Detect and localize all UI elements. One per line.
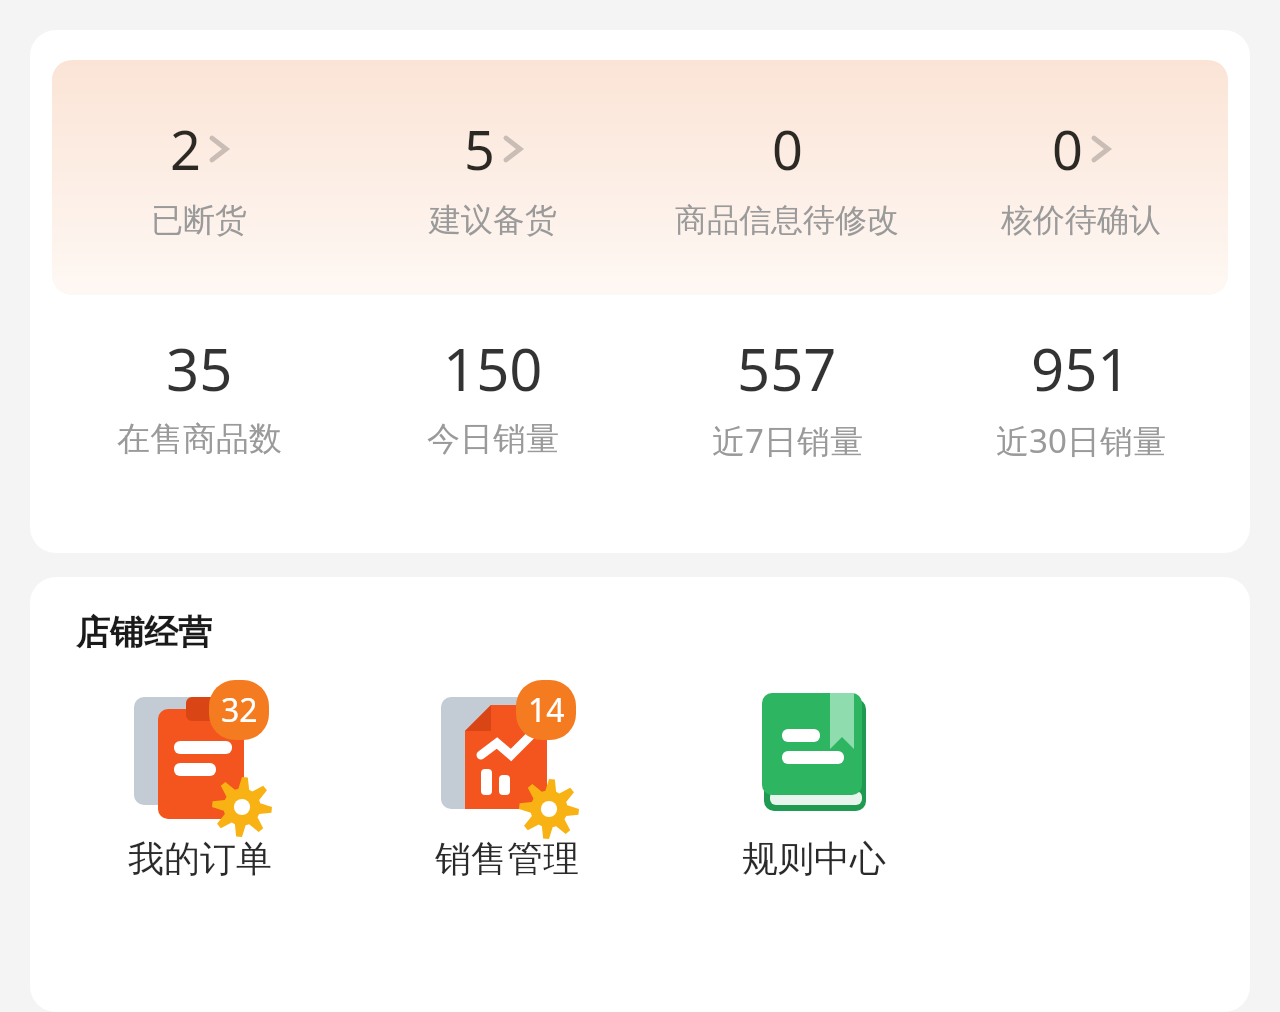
button[interactable]: 35: [52, 329, 346, 460]
staticText: 规则中心: [742, 836, 886, 881]
staticText: 核价待确认: [1001, 200, 1161, 240]
staticText: 商品信息待修改: [675, 200, 899, 240]
staticText: 今日销量: [427, 418, 559, 460]
staticText: 150: [443, 329, 543, 408]
button[interactable]: 0: [640, 60, 934, 295]
staticText: 建议备货: [429, 200, 557, 240]
button[interactable]: 2: [52, 60, 346, 295]
button[interactable]: 951: [934, 329, 1228, 463]
button[interactable]: 我的订单: [46, 680, 353, 881]
staticText: 近30日销量: [996, 418, 1166, 463]
staticText: 在售商品数: [117, 418, 282, 460]
button[interactable]: 规则中心: [660, 680, 967, 881]
staticText: 近7日销量: [712, 418, 863, 463]
button[interactable]: 5: [346, 60, 640, 295]
staticText: 5: [464, 112, 495, 186]
button[interactable]: 150: [346, 329, 640, 460]
staticText: 销售管理: [435, 836, 579, 881]
button[interactable]: 0: [934, 60, 1228, 295]
staticText: 0: [772, 112, 803, 186]
staticText: 店铺经营: [76, 611, 212, 654]
staticText: 已断货: [151, 200, 247, 240]
staticText: 0: [1052, 112, 1083, 186]
staticText: 我的订单: [128, 836, 272, 881]
staticText: 951: [1031, 329, 1131, 408]
button[interactable]: 销售管理: [353, 680, 660, 881]
staticText: 35: [166, 329, 233, 408]
staticText: 557: [737, 329, 837, 408]
staticText: 14: [528, 688, 565, 732]
button[interactable]: 557: [640, 329, 934, 463]
staticText: 32: [221, 688, 258, 732]
staticText: 2: [170, 112, 201, 186]
